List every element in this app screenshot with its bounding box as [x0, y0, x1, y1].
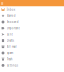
staticText: Trash [7, 57, 13, 61]
staticText: Sent [7, 33, 13, 36]
button[interactable]: Inbox [0, 6, 64, 13]
staticText: Important [7, 26, 20, 30]
button[interactable]: All mail [0, 44, 64, 50]
button[interactable]: Trash [0, 56, 64, 62]
staticText: Snoozed [7, 20, 19, 24]
button[interactable]: Open menu [0, 0, 4, 6]
staticText: Drafts [7, 39, 14, 42]
button[interactable]: Important [0, 25, 64, 31]
staticText: Inbox [7, 8, 15, 11]
staticText: Starred [7, 14, 16, 17]
button[interactable]: Sent [0, 31, 64, 37]
button[interactable]: Starred [0, 13, 64, 19]
button[interactable]: Settings [0, 62, 64, 68]
button[interactable]: Snoozed [0, 19, 64, 25]
staticText: Spam [7, 51, 13, 55]
staticText: Settings [7, 64, 18, 67]
staticText: All mail [7, 45, 17, 48]
button[interactable]: Drafts [0, 37, 64, 44]
button[interactable]: Spam [0, 50, 64, 56]
